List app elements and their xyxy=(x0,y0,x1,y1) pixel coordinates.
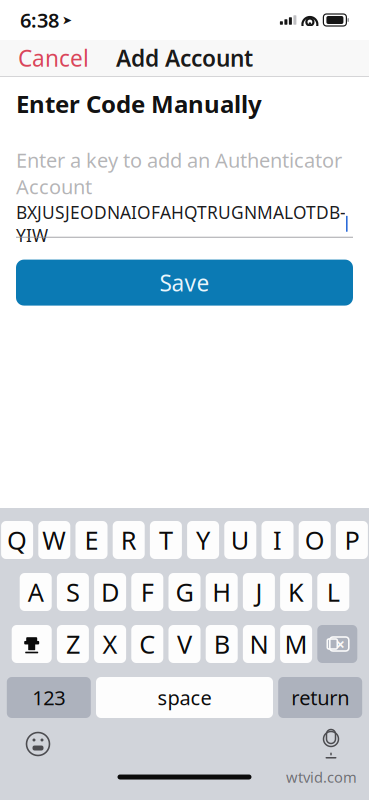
staticText: Save xyxy=(159,267,209,298)
button[interactable]: N xyxy=(243,625,275,663)
staticText: Add Account xyxy=(116,43,253,73)
button[interactable]: L xyxy=(317,573,349,611)
staticText: A xyxy=(28,575,44,609)
staticText: N xyxy=(249,627,268,661)
button[interactable]: Q xyxy=(1,521,33,559)
staticText: space xyxy=(157,684,211,711)
staticText: U xyxy=(231,523,250,557)
staticText: L xyxy=(327,575,340,609)
staticText: Z xyxy=(66,627,80,661)
button[interactable]: Delete xyxy=(317,625,357,663)
button[interactable]: D xyxy=(94,573,126,611)
staticText: V xyxy=(177,627,192,661)
staticText: Enter a key to add an Authenticator Acco… xyxy=(16,147,342,200)
button[interactable]: S xyxy=(57,573,89,611)
button[interactable]: M xyxy=(280,625,312,663)
staticText: × xyxy=(336,633,345,655)
staticText: F xyxy=(141,575,154,609)
button[interactable]: F xyxy=(131,573,163,611)
button[interactable]: Emoji xyxy=(18,724,58,764)
button[interactable]: 123 xyxy=(7,677,91,718)
button[interactable]: W xyxy=(38,521,70,559)
staticText: O xyxy=(305,523,325,557)
staticText: R xyxy=(121,523,137,557)
button[interactable]: G xyxy=(168,573,200,611)
button[interactable]: J xyxy=(243,573,275,611)
button[interactable]: K xyxy=(280,573,312,611)
staticText: H xyxy=(212,575,231,609)
button[interactable]: B xyxy=(206,625,238,663)
staticText: BXJUSJEODNAIOFAHQTRUGNMALOTDBYIW xyxy=(16,201,346,247)
staticText: C xyxy=(139,627,155,661)
button[interactable]: T xyxy=(150,521,182,559)
button[interactable]: return xyxy=(278,677,362,718)
button[interactable]: Save xyxy=(16,260,353,306)
staticText: 123 xyxy=(32,684,65,711)
staticText: S xyxy=(66,575,80,609)
staticText: T xyxy=(159,523,173,557)
button[interactable]: V xyxy=(168,625,200,663)
staticText: 6:38 xyxy=(20,7,59,33)
staticText: P xyxy=(344,523,359,557)
button[interactable]: Y xyxy=(187,521,219,559)
button[interactable]: U xyxy=(224,521,256,559)
staticText: I xyxy=(273,523,282,557)
staticText: M xyxy=(285,627,308,661)
staticText: wtvid.com xyxy=(286,767,357,787)
button[interactable]: P xyxy=(336,521,368,559)
button[interactable]: O xyxy=(299,521,331,559)
staticText: return xyxy=(291,684,349,711)
staticText: B xyxy=(214,627,230,661)
staticText: ➤ xyxy=(62,13,72,27)
button[interactable]: Shift xyxy=(12,625,52,663)
button[interactable]: I xyxy=(261,521,293,559)
staticText: Enter Code Manually xyxy=(16,88,262,120)
button[interactable]: Cancel xyxy=(0,40,107,76)
button[interactable]: space xyxy=(96,677,273,718)
button[interactable]: A xyxy=(20,573,52,611)
button[interactable]: Z xyxy=(57,625,89,663)
button[interactable]: H xyxy=(206,573,238,611)
button[interactable]: C xyxy=(131,625,163,663)
button[interactable]: X xyxy=(94,625,126,663)
staticText: G xyxy=(175,575,193,609)
staticText: E xyxy=(84,523,98,557)
button[interactable]: Dictation xyxy=(311,724,351,764)
staticText: X xyxy=(103,627,118,661)
button[interactable]: E xyxy=(75,521,107,559)
staticText: Q xyxy=(7,523,27,557)
button[interactable]: R xyxy=(113,521,145,559)
staticText: K xyxy=(288,575,304,609)
staticText: W xyxy=(42,523,66,557)
staticText: D xyxy=(101,575,119,609)
staticText: Cancel xyxy=(18,43,89,73)
staticText: Y xyxy=(196,523,210,557)
staticText: J xyxy=(255,575,262,609)
